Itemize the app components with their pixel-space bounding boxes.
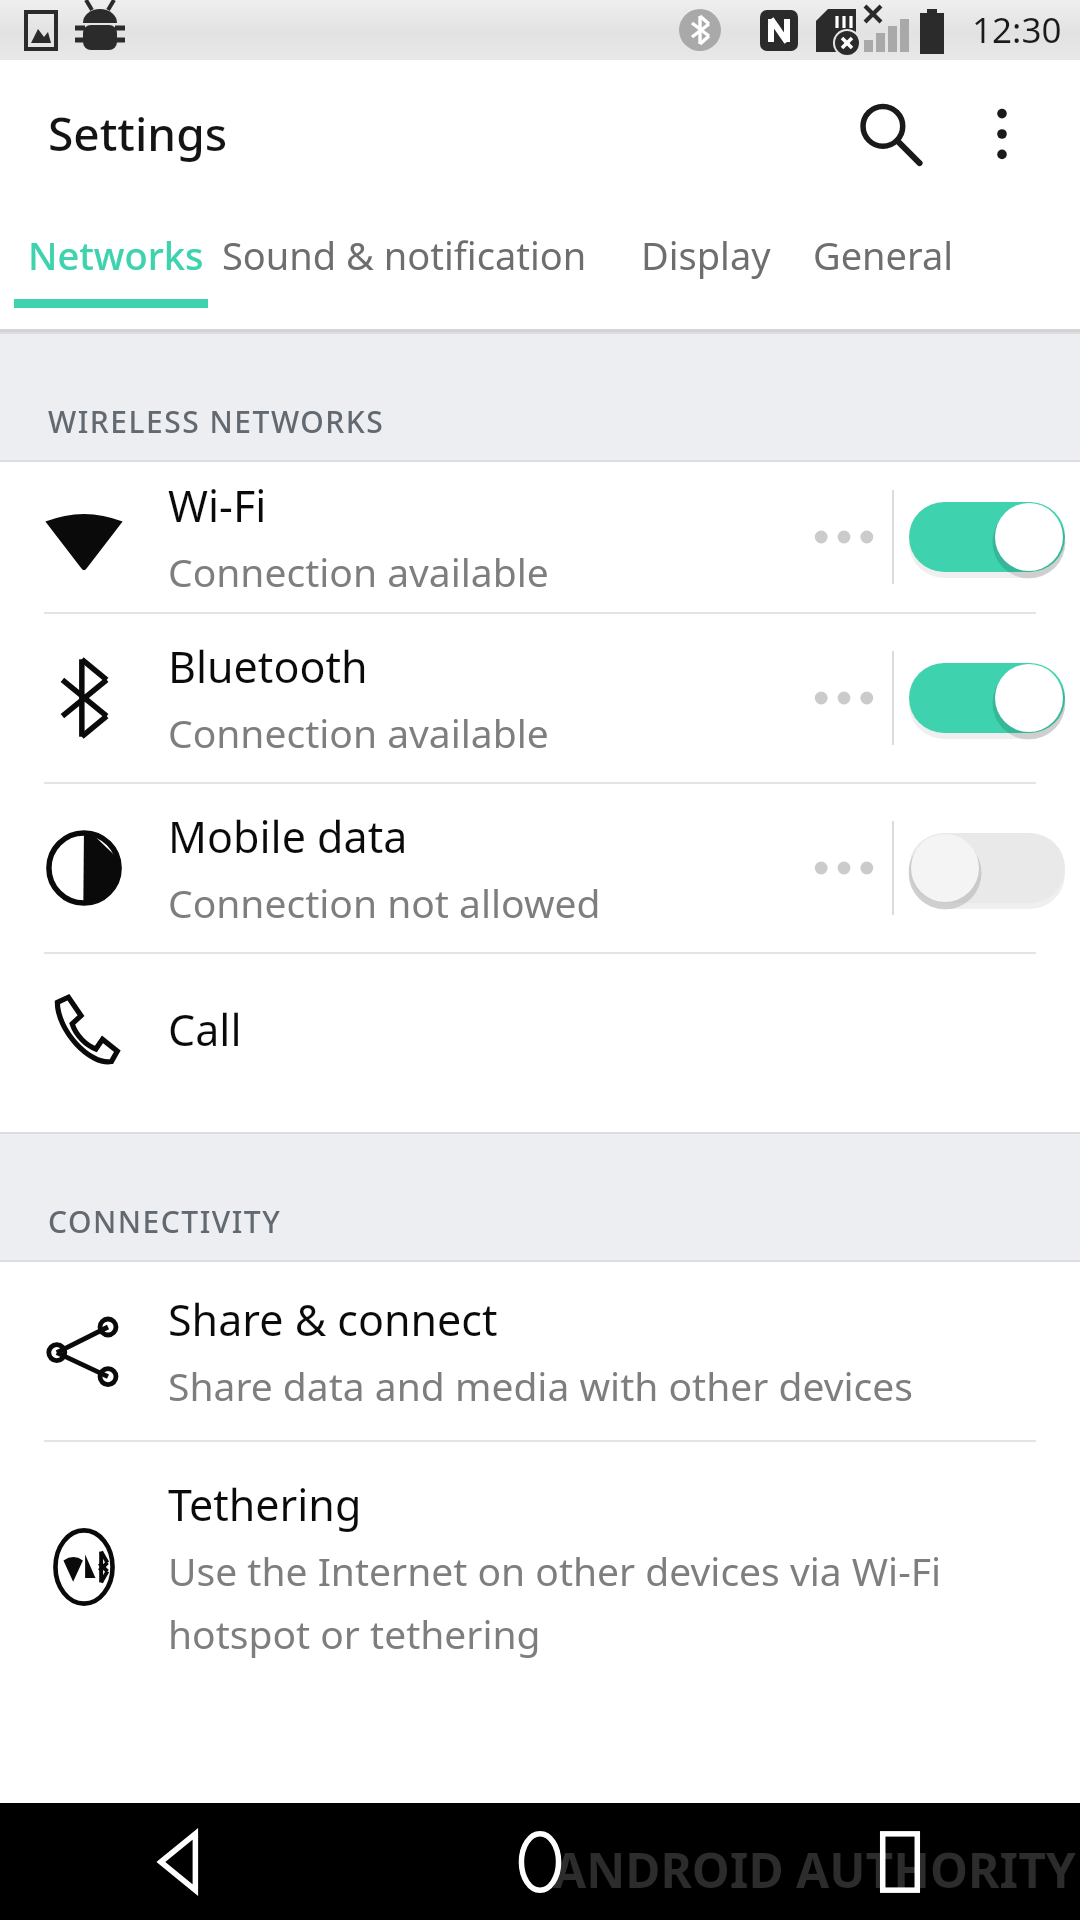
button[interactable]: Tethering [0, 1442, 1080, 1692]
button[interactable]: Back [0, 1803, 360, 1920]
staticText: Networks [28, 229, 204, 281]
button[interactable]: Wi-Fi [0, 462, 1080, 612]
button[interactable]: Home [360, 1803, 720, 1920]
button[interactable]: Recent apps [720, 1803, 1080, 1920]
staticText: Use the Internet on other devices via Wi… [168, 1544, 942, 1597]
staticText: Settings [48, 102, 228, 165]
staticText: 12:30 [972, 6, 1062, 54]
staticText: Share data and media with other devices [168, 1359, 913, 1412]
button[interactable]: More options [950, 82, 1054, 186]
button[interactable]: Bluetooth settings [796, 614, 892, 782]
staticText: WIRELESS NETWORKS [48, 401, 385, 442]
button[interactable]: Sound & notification [222, 207, 587, 332]
staticText: ANDROID AUTHORITY [553, 1837, 1076, 1902]
staticText: hotspot or tethering [168, 1607, 541, 1660]
staticText: General [813, 229, 954, 281]
button[interactable]: Wi-Fi settings [796, 462, 892, 612]
button[interactable]: Share & connect [0, 1262, 1080, 1440]
button[interactable]: Display [587, 207, 771, 332]
button[interactable]: Networks [0, 207, 222, 332]
staticText: Mobile data [168, 807, 408, 866]
staticText: Connection available [168, 545, 549, 598]
staticText: Bluetooth [168, 637, 368, 696]
staticText: Sound & notification [222, 229, 587, 281]
staticText: Share & connect [168, 1290, 498, 1349]
staticText: Wi-Fi [168, 476, 267, 535]
button[interactable]: Call [0, 954, 1080, 1104]
button[interactable]: Search [836, 82, 940, 186]
staticText: CONNECTIVITY [48, 1201, 282, 1242]
staticText: Call [168, 1000, 242, 1059]
staticText: Tethering [168, 1475, 362, 1534]
staticText: Connection available [168, 706, 549, 759]
button[interactable]: Turn on [894, 813, 1080, 923]
staticText: Connection not allowed [168, 876, 601, 929]
button[interactable]: Bluetooth [0, 614, 1080, 782]
button[interactable]: General [771, 207, 954, 332]
staticText: Display [641, 229, 771, 281]
button[interactable]: Mobile data settings [796, 784, 892, 952]
button[interactable]: Turn off [894, 482, 1080, 592]
button[interactable]: Turn off [894, 643, 1080, 753]
button[interactable]: Mobile data [0, 784, 1080, 952]
